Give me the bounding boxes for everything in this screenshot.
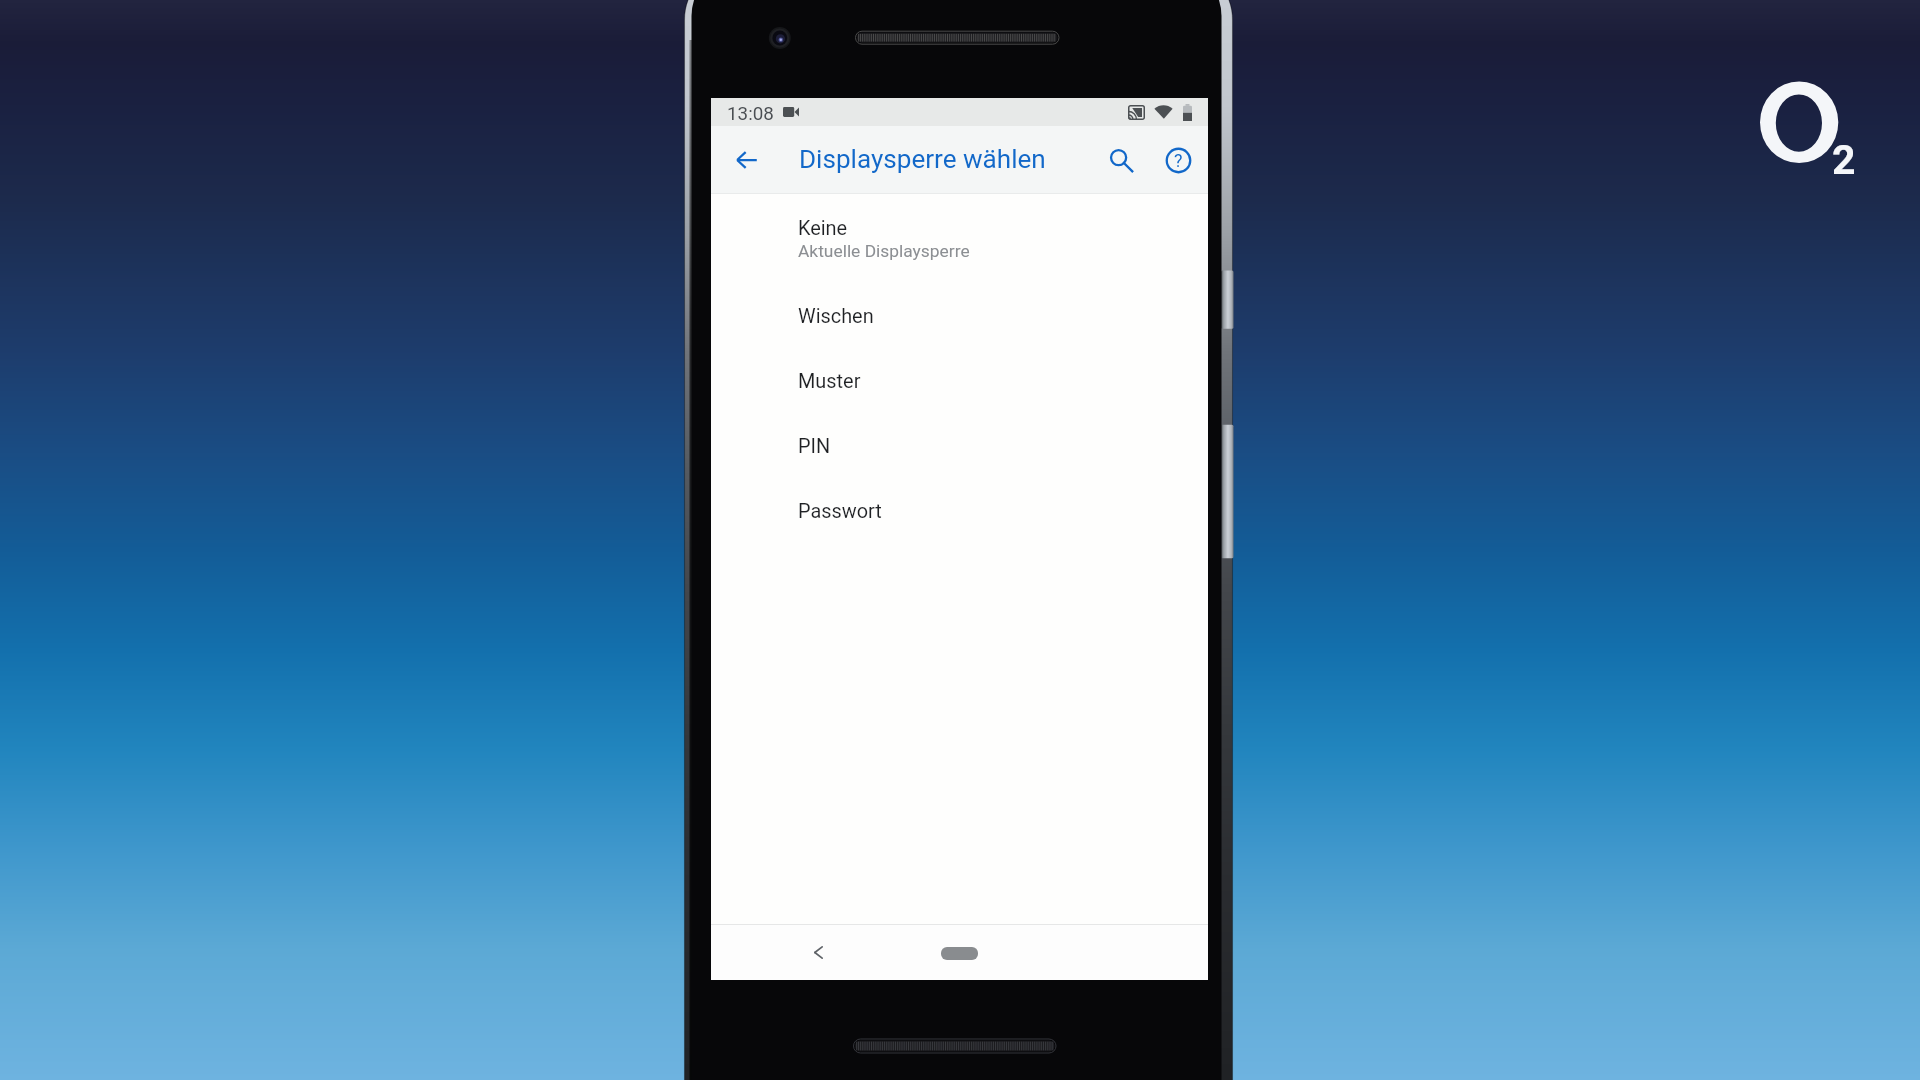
staticText: PIN (798, 435, 831, 458)
staticText: 2 (1832, 136, 1856, 184)
staticText: Passwort (798, 500, 882, 523)
button[interactable]: Suchen (1099, 138, 1143, 182)
staticText: ? (1174, 150, 1183, 171)
button[interactable]: Zurück (796, 930, 840, 974)
staticText: Wischen (798, 305, 874, 328)
button[interactable]: Keine (711, 194, 1208, 278)
staticText: Aktuelle Displaysperre (798, 241, 970, 261)
staticText: Muster (798, 370, 861, 393)
button[interactable]: Wischen (711, 278, 1208, 343)
staticText: Displaysperre wählen (799, 144, 1046, 175)
button[interactable]: Startbildschirm (941, 947, 978, 960)
button[interactable]: Zurück (723, 137, 769, 183)
staticText: Keine (798, 217, 848, 240)
button[interactable]: Hilfe (1156, 138, 1200, 182)
button[interactable]: Passwort (711, 473, 1208, 538)
button[interactable]: Muster (711, 343, 1208, 408)
button[interactable]: PIN (711, 408, 1208, 473)
staticText: 13:08 (727, 103, 774, 125)
